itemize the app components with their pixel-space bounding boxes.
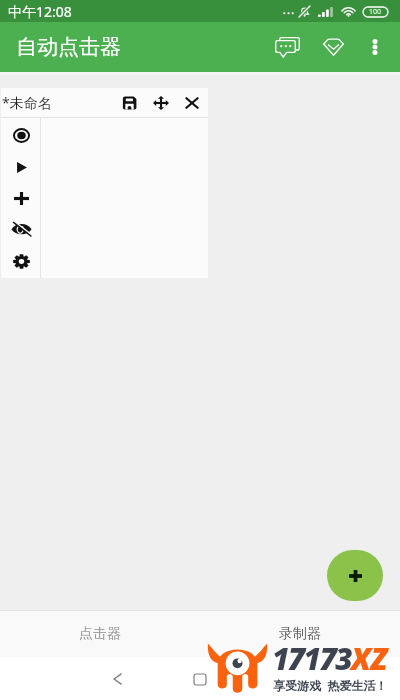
- button[interactable]: Back: [102, 664, 132, 694]
- staticText: 享受游戏 热爱生活！: [273, 677, 388, 693]
- staticText: 录制器: [279, 625, 321, 643]
- button[interactable]: Record: [7, 121, 35, 149]
- button[interactable]: 录制器: [200, 611, 400, 657]
- button[interactable]: Close: [176, 88, 207, 117]
- button[interactable]: Premium: [311, 25, 355, 69]
- staticText: 点击器: [79, 625, 121, 643]
- button[interactable]: Play: [7, 153, 35, 181]
- button[interactable]: 点击器: [0, 611, 200, 657]
- button[interactable]: Add: [327, 550, 383, 601]
- button[interactable]: Hide: [7, 215, 35, 243]
- staticText: XZ: [351, 638, 388, 679]
- button[interactable]: Settings: [7, 247, 35, 275]
- button[interactable]: Home: [185, 664, 215, 694]
- button[interactable]: Add action: [7, 184, 35, 212]
- staticText: *未命名: [2, 93, 114, 112]
- staticText: 自动点击器: [16, 34, 121, 60]
- button[interactable]: Move: [145, 88, 176, 117]
- staticText: 中午12:08: [8, 2, 72, 21]
- staticText: 100: [369, 7, 382, 17]
- button[interactable]: More options: [355, 27, 395, 67]
- button[interactable]: Save: [114, 88, 145, 117]
- button[interactable]: Feedback: [263, 23, 311, 71]
- staticText: 17173: [272, 638, 351, 679]
